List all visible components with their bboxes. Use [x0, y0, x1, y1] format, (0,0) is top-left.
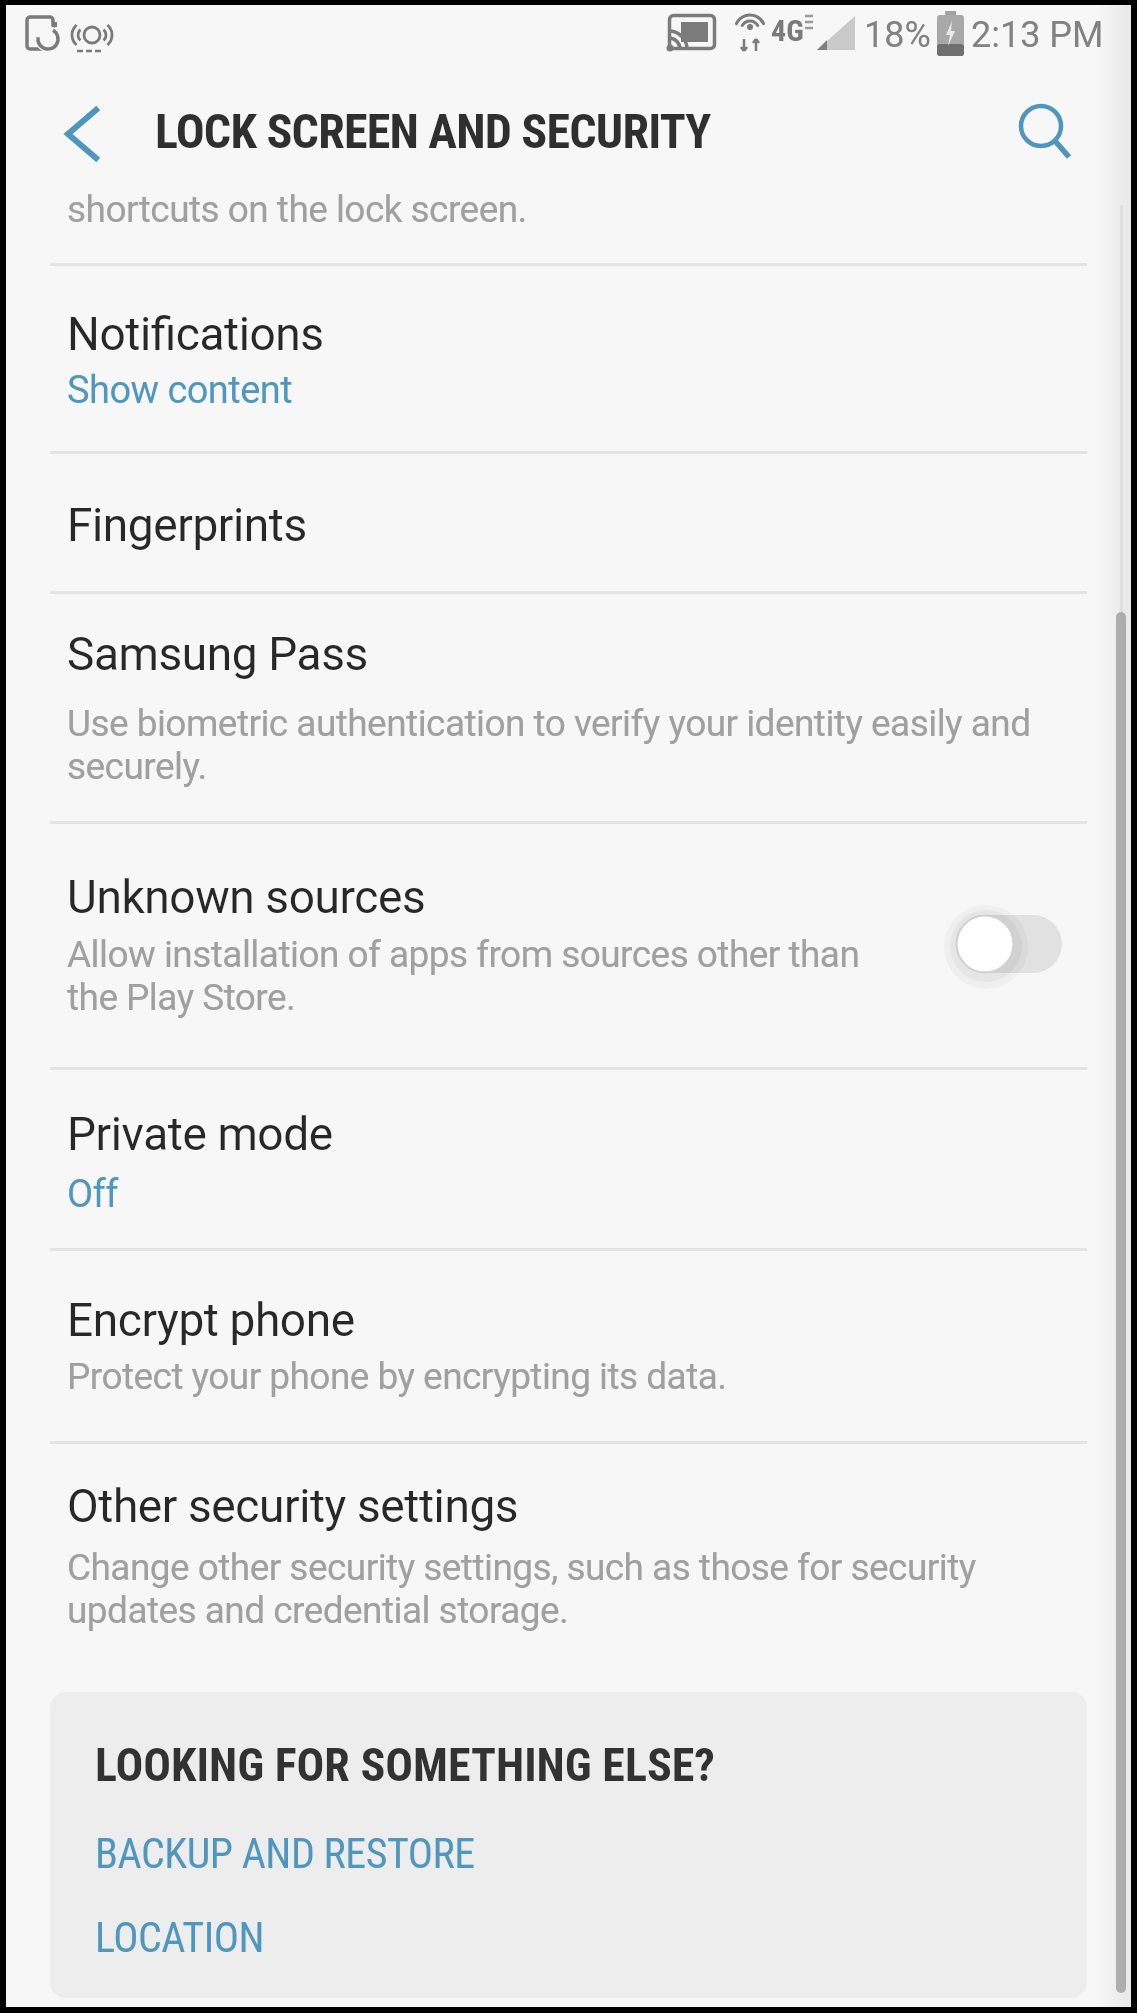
- staticText: Notifications: [67, 307, 324, 361]
- button[interactable]: Private mode: [40, 1067, 1097, 1252]
- staticText: Samsung Pass: [67, 627, 368, 681]
- button[interactable]: LOCATION: [50, 1904, 1087, 1978]
- staticText: Off: [67, 1172, 118, 1217]
- button[interactable]: [44, 98, 114, 170]
- staticText: LOCATION: [95, 1913, 264, 1962]
- staticText: Show content: [67, 368, 293, 413]
- staticText: shortcuts on the lock screen.: [67, 188, 527, 231]
- staticText: Allow installation of apps from sources …: [67, 933, 860, 1019]
- button[interactable]: shortcuts on the lock screen.: [40, 178, 1097, 264]
- button[interactable]: Encrypt phone: [40, 1254, 1097, 1436]
- button[interactable]: Other security settings: [40, 1438, 1097, 1658]
- staticText: Unknown sources: [67, 870, 426, 924]
- staticText: 4G: [771, 13, 804, 48]
- staticText: 2:13 PM: [971, 14, 1104, 56]
- staticText: BACKUP AND RESTORE: [95, 1829, 475, 1878]
- staticText: Protect your phone by encrypting its dat…: [67, 1355, 727, 1398]
- staticText: Encrypt phone: [67, 1293, 355, 1347]
- button[interactable]: BACKUP AND RESTORE: [50, 1820, 1087, 1894]
- staticText: 18%: [864, 14, 931, 56]
- button[interactable]: Unknown sources: [40, 840, 1097, 1065]
- staticText: Private mode: [67, 1107, 333, 1161]
- button[interactable]: [1005, 92, 1085, 170]
- button[interactable]: Fingerprints: [40, 458, 1097, 592]
- staticText: Use biometric authentication to verify y…: [67, 702, 1031, 788]
- staticText: Change other security settings, such as …: [67, 1546, 976, 1632]
- staticText: Fingerprints: [67, 498, 307, 552]
- staticText: LOCK SCREEN AND SECURITY: [155, 103, 711, 159]
- staticText: LOOKING FOR SOMETHING ELSE?: [95, 1738, 715, 1792]
- button[interactable]: Notifications: [40, 266, 1097, 456]
- button[interactable]: Samsung Pass: [40, 594, 1097, 838]
- staticText: Other security settings: [67, 1479, 519, 1533]
